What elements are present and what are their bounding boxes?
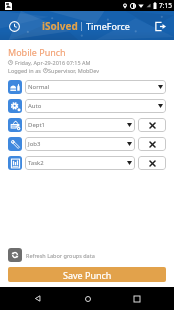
staticText: Logged in as (8, 67, 43, 74)
button[interactable]: Clear (138, 156, 166, 170)
button[interactable]: Category icon (8, 80, 22, 94)
button[interactable]: Back (26, 287, 49, 310)
button[interactable]: Auto (25, 99, 166, 113)
button[interactable]: Normal (25, 80, 166, 94)
staticText: Auto (28, 102, 158, 110)
staticText: Normal (28, 83, 158, 91)
staticText: TimeForce (86, 20, 130, 32)
staticText: Friday, Apr-29-2016 07:15 AM (15, 59, 91, 66)
button[interactable]: Recent apps (125, 287, 148, 310)
staticText: iSolved (42, 19, 78, 33)
staticText: Job3 (28, 140, 127, 148)
button[interactable]: Category icon (8, 118, 22, 132)
button[interactable]: Job3 (25, 137, 135, 151)
button[interactable]: Dept1 (25, 118, 135, 132)
button[interactable]: Clear (138, 137, 166, 151)
button[interactable]: Category icon (8, 99, 22, 113)
staticText: Supervisor, MobDev (48, 67, 100, 74)
staticText: Dept1 (28, 121, 127, 129)
staticText: Refresh Labor groups data (26, 252, 95, 259)
button[interactable]: Time clock (3, 15, 25, 37)
staticText: Mobile Punch (8, 46, 66, 58)
button[interactable]: Save Punch (8, 267, 166, 282)
button[interactable]: Task2 (25, 156, 135, 170)
button[interactable]: Category icon (8, 156, 22, 170)
button[interactable]: Category icon (8, 137, 22, 151)
staticText: Save Punch (63, 269, 112, 281)
button[interactable]: Clear (138, 118, 166, 132)
staticText: Task2 (28, 159, 127, 167)
button[interactable]: Refresh Labor groups data (8, 248, 95, 262)
button[interactable]: Home (76, 287, 99, 310)
staticText: 7:15 (159, 1, 172, 10)
button[interactable]: Log out (149, 15, 171, 37)
